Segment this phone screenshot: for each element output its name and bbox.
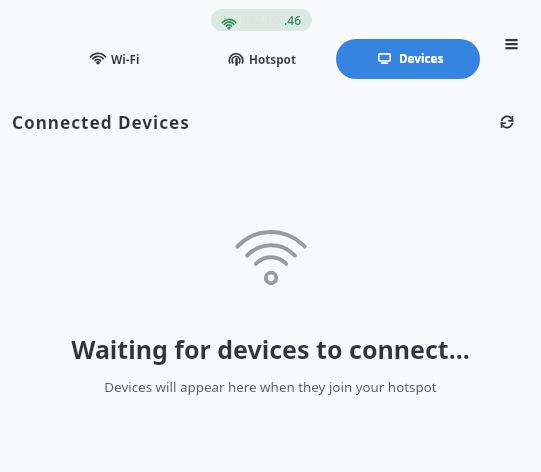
staticText: Devices will appear here when they join … xyxy=(104,378,437,396)
button[interactable]: Hotspot xyxy=(222,45,300,73)
button[interactable]: Menu xyxy=(499,32,523,56)
staticText: Hotspot xyxy=(249,51,296,67)
button[interactable]: Refresh xyxy=(494,109,520,135)
button[interactable]: Devices xyxy=(336,39,480,79)
staticText: .46 xyxy=(284,12,301,28)
staticText: Connected Devices xyxy=(12,111,190,134)
staticText: 192.168.43 xyxy=(242,12,301,28)
staticText: Devices xyxy=(399,50,444,66)
staticText: Wi-Fi xyxy=(111,51,140,67)
button[interactable]: 192.168.43 xyxy=(211,9,312,31)
staticText: Waiting for devices to connect... xyxy=(71,332,470,366)
button[interactable]: Wi-Fi xyxy=(84,45,144,73)
